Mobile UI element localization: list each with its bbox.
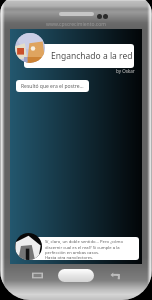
staticText: Resultó que era el postre... (21, 83, 84, 90)
staticText: Enganchado a la red (51, 50, 133, 62)
button[interactable]: Resultó que era el postre... (16, 80, 89, 92)
staticText: Sí, claro, un doble sentido... Pero ¿cóm… (45, 239, 123, 260)
button[interactable]: Enganchado a la red (24, 44, 134, 68)
button[interactable]: Back (110, 271, 121, 280)
staticText: by Oskar (116, 68, 135, 74)
button[interactable]: Reader photo (15, 233, 42, 260)
button[interactable]: Sí, claro, un doble sentido... Pero ¿cóm… (30, 237, 139, 260)
button[interactable]: Home (58, 269, 94, 282)
staticText: www.cpscrecimiento.com (44, 21, 108, 28)
button[interactable]: Menu (32, 271, 43, 280)
button[interactable]: Author avatar (15, 33, 45, 63)
